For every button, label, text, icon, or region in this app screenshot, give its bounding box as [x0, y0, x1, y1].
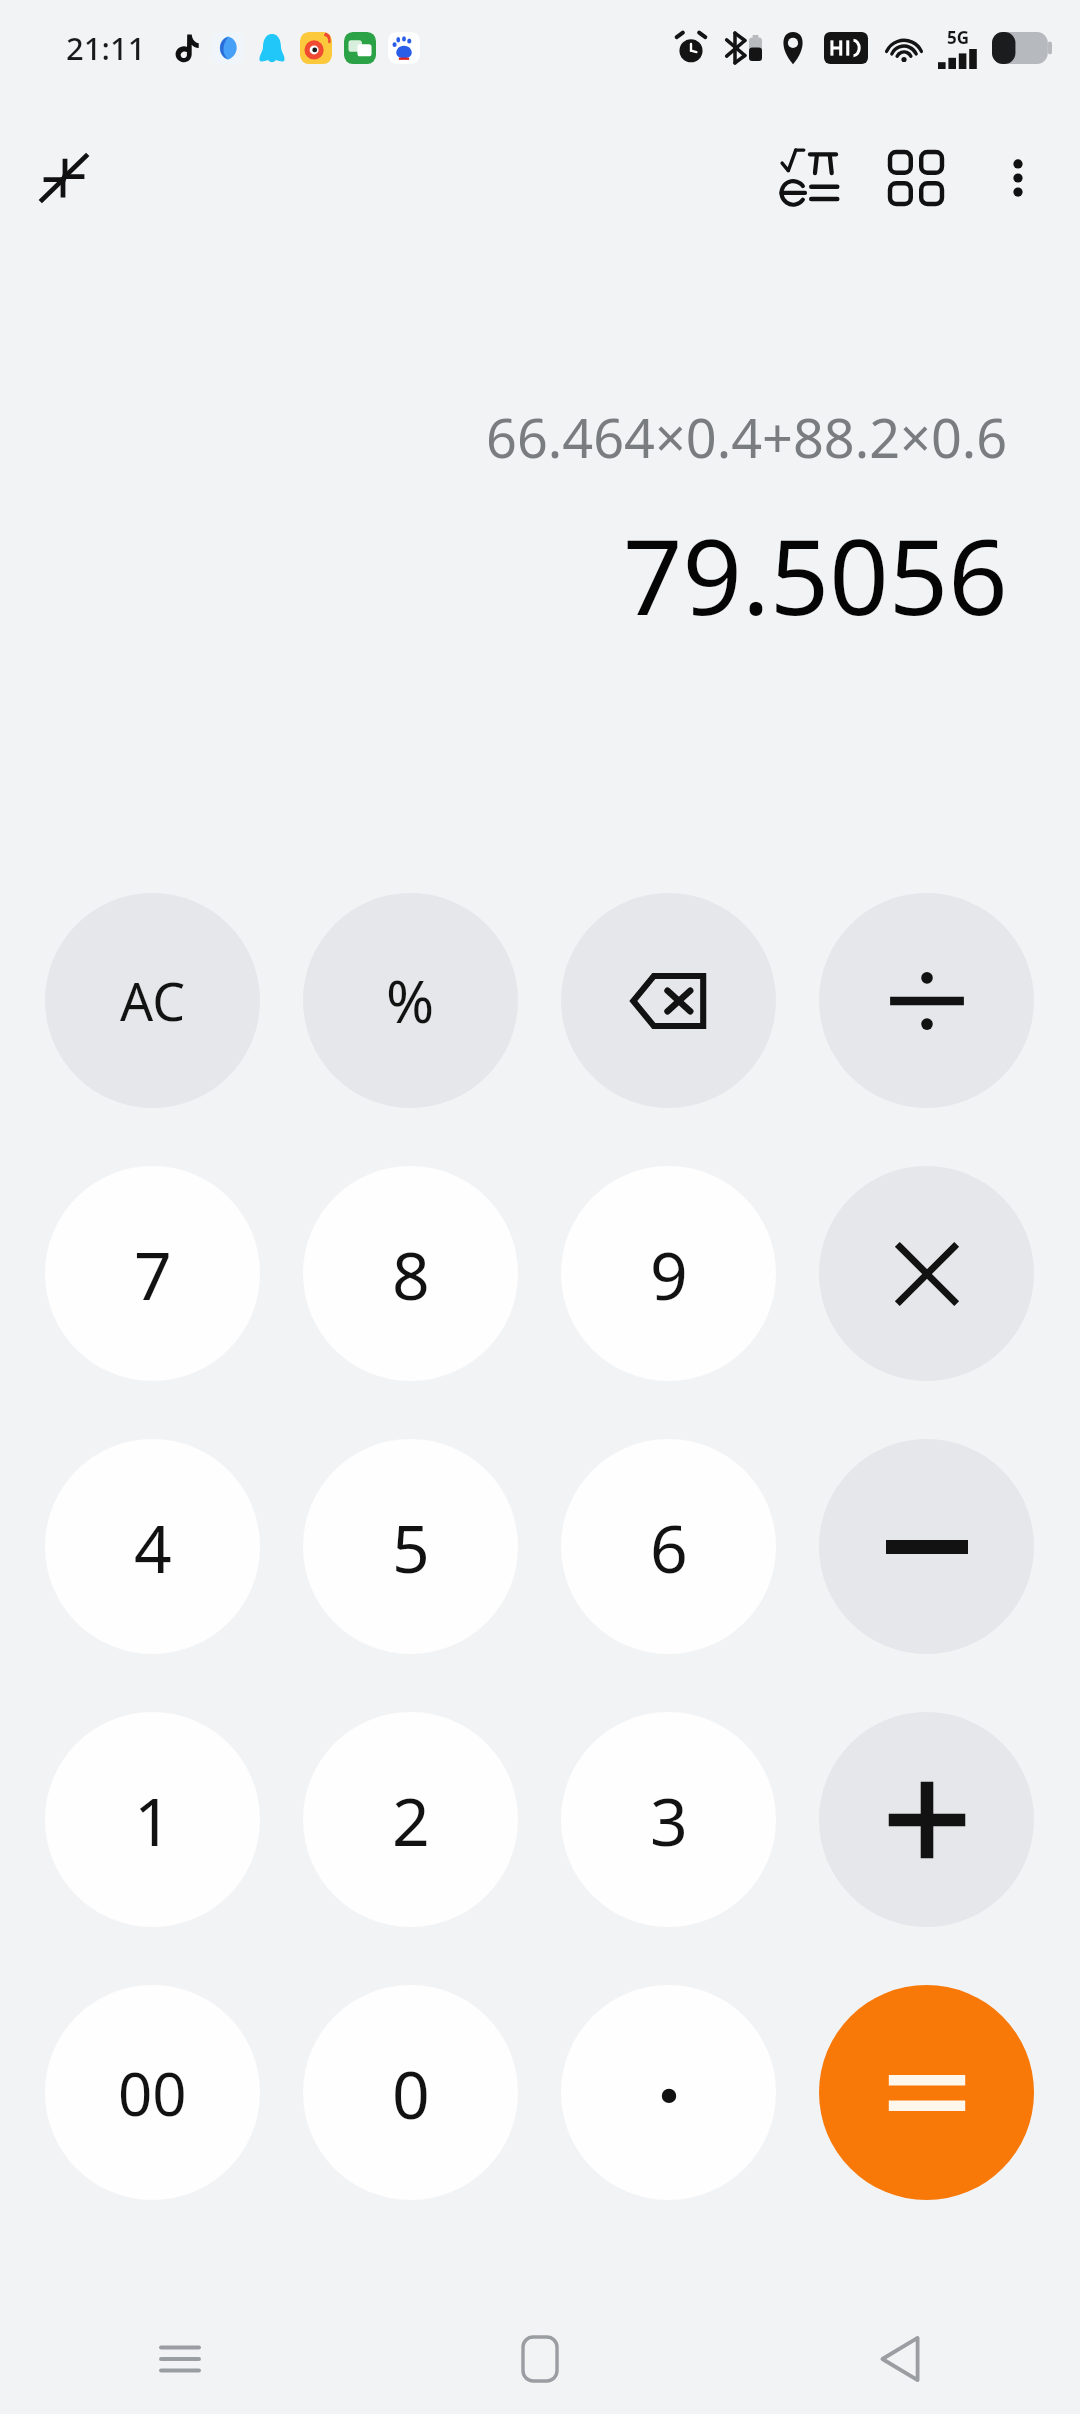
button[interactable]: Equals — [819, 1985, 1034, 2200]
button[interactable]: Subtract — [819, 1439, 1034, 1654]
staticText: 66.464×0.4+88.2×0.6 — [486, 400, 1008, 474]
button[interactable]: 4 — [45, 1439, 260, 1654]
button[interactable]: 9 — [561, 1166, 776, 1381]
button[interactable]: Add — [819, 1712, 1034, 1927]
button[interactable]: 00 — [45, 1985, 260, 2200]
staticText: 21:11 — [66, 27, 146, 69]
staticText: 9 — [650, 1229, 688, 1319]
button[interactable]: Collapse — [18, 132, 110, 224]
button[interactable]: Recent apps — [0, 2304, 360, 2414]
button[interactable]: 0 — [303, 1985, 518, 2200]
button[interactable]: 6 — [561, 1439, 776, 1654]
button[interactable]: 3 — [561, 1712, 776, 1927]
button[interactable]: More options — [970, 130, 1066, 226]
staticText: 00 — [118, 2052, 187, 2134]
button[interactable]: Unit converter — [868, 130, 964, 226]
staticText: 79.5056 — [623, 504, 1008, 646]
staticText: % — [386, 961, 435, 1040]
button[interactable]: Backspace — [561, 893, 776, 1108]
button[interactable]: 2 — [303, 1712, 518, 1927]
button[interactable]: Divide — [819, 893, 1034, 1108]
button[interactable]: Back — [720, 2304, 1080, 2414]
button[interactable]: AC — [45, 893, 260, 1108]
button[interactable]: Multiply — [819, 1166, 1034, 1381]
staticText: 4 — [134, 1502, 172, 1592]
button[interactable]: Home — [360, 2304, 720, 2414]
staticText: 6 — [650, 1502, 688, 1592]
button[interactable]: % — [303, 893, 518, 1108]
button[interactable]: Scientific mode — [762, 130, 858, 226]
staticText: 2 — [392, 1775, 430, 1865]
staticText: AC — [120, 965, 186, 1036]
button[interactable]: 5 — [303, 1439, 518, 1654]
staticText: 3 — [650, 1775, 688, 1865]
staticText: 8 — [392, 1229, 430, 1319]
button[interactable]: 1 — [45, 1712, 260, 1927]
staticText: 7 — [134, 1229, 172, 1319]
staticText: 5G — [947, 26, 970, 49]
staticText: 5 — [392, 1502, 430, 1592]
staticText: 0 — [392, 2048, 430, 2138]
button[interactable] — [561, 1985, 776, 2200]
button[interactable]: 7 — [45, 1166, 260, 1381]
staticText: 1 — [134, 1775, 172, 1865]
button[interactable]: 8 — [303, 1166, 518, 1381]
